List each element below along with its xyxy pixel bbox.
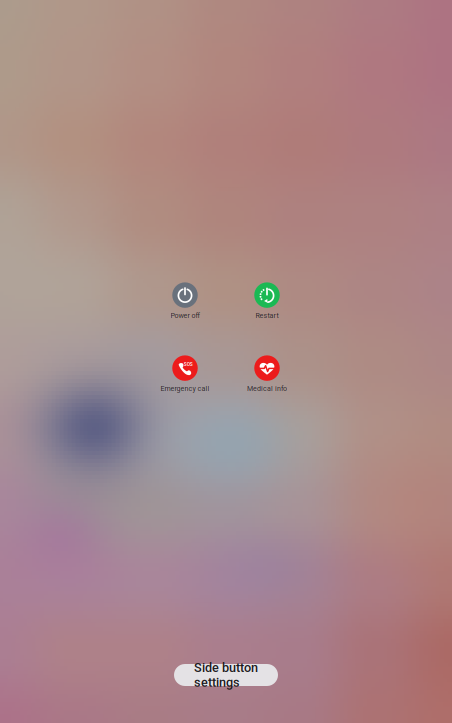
button[interactable]: Medical info: [229, 355, 305, 393]
button[interactable]: Power off: [147, 282, 223, 320]
staticText: SOS: [184, 361, 193, 367]
button[interactable]: Restart: [229, 282, 305, 320]
button[interactable]: Side button settings: [174, 664, 278, 686]
button[interactable]: SOS: [147, 355, 223, 393]
staticText: Power off: [170, 311, 199, 320]
staticText: Side button settings: [194, 660, 258, 690]
staticText: Emergency call: [160, 384, 209, 393]
staticText: Medical info: [247, 384, 287, 393]
staticText: Restart: [255, 311, 278, 320]
